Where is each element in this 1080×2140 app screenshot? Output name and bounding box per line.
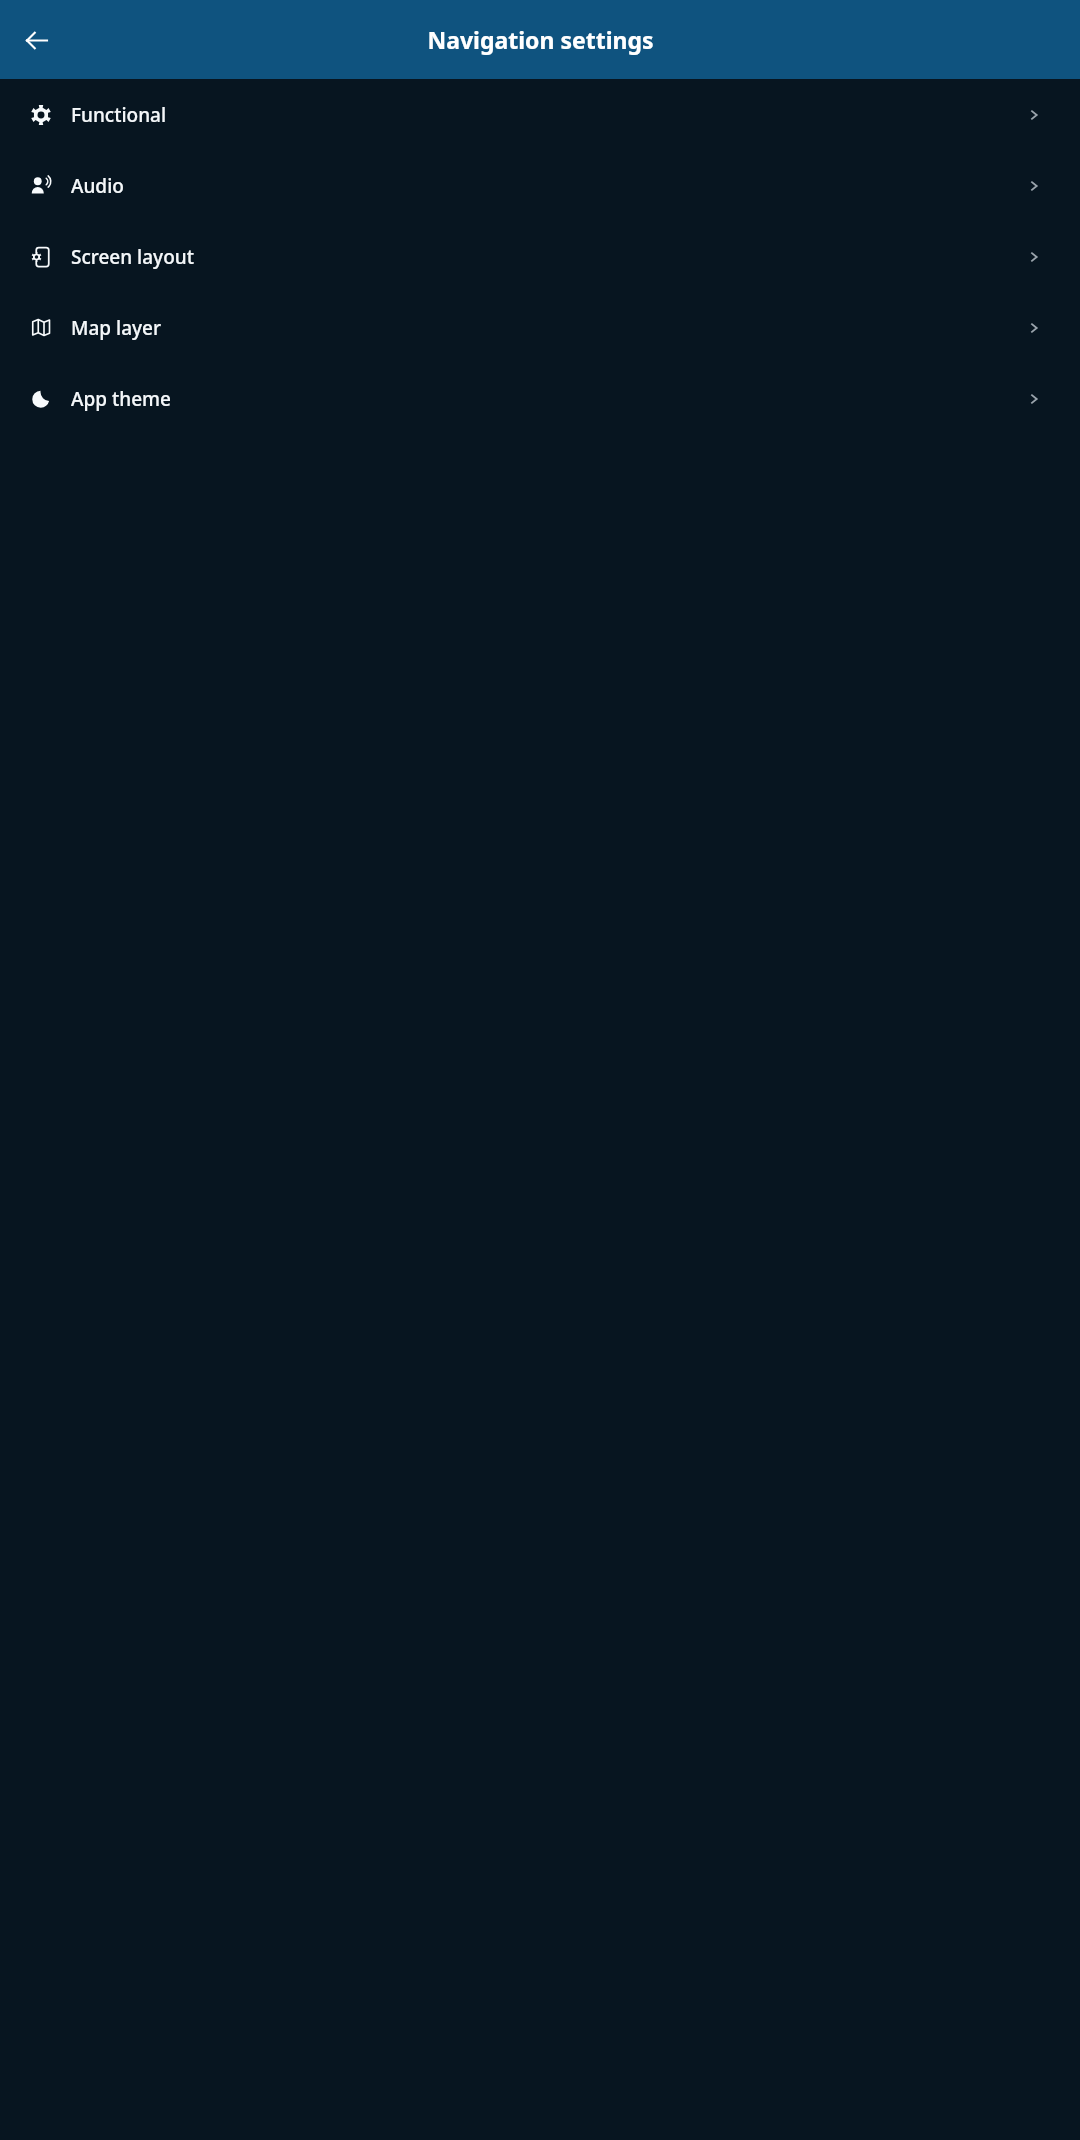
button[interactable]: Back xyxy=(12,16,60,64)
button[interactable]: Functional xyxy=(0,79,1080,150)
button[interactable]: App theme xyxy=(0,363,1080,434)
staticText: Functional xyxy=(71,102,167,128)
staticText: Screen layout xyxy=(71,244,194,270)
button[interactable]: Screen layout xyxy=(0,221,1080,292)
staticText: App theme xyxy=(71,386,171,412)
button[interactable]: Audio xyxy=(0,150,1080,221)
staticText: Navigation settings xyxy=(427,24,654,55)
button[interactable]: Map layer xyxy=(0,292,1080,363)
staticText: Map layer xyxy=(71,315,162,341)
staticText: Audio xyxy=(71,173,124,199)
